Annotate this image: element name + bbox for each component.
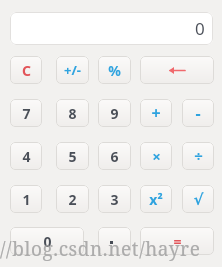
- staticText: ×: [152, 146, 161, 166]
- button[interactable]: 4: [10, 142, 42, 170]
- staticText: 9: [110, 104, 119, 123]
- staticText: 0: [195, 17, 205, 40]
- staticText: -: [195, 102, 201, 124]
- staticText: 2: [68, 190, 77, 209]
- staticText: 3: [110, 190, 119, 209]
- staticText: 4: [22, 147, 31, 166]
- button[interactable]: √: [182, 185, 214, 213]
- staticText: //blog.csdn.net/hayre: [0, 236, 201, 262]
- button[interactable]: ×: [140, 142, 172, 170]
- button[interactable]: ÷: [182, 142, 214, 170]
- button[interactable]: =: [140, 227, 214, 255]
- button[interactable]: 1: [10, 185, 42, 213]
- button[interactable]: 8: [56, 99, 89, 127]
- button[interactable]: 5: [56, 142, 89, 170]
- button[interactable]: [140, 56, 214, 84]
- staticText: +/-: [64, 61, 81, 79]
- button[interactable]: +: [140, 99, 172, 127]
- staticText: 7: [22, 104, 31, 123]
- button[interactable]: %: [98, 56, 131, 84]
- button[interactable]: 7: [10, 99, 42, 127]
- staticText: 8: [68, 104, 77, 123]
- button[interactable]: 3: [98, 185, 131, 213]
- button[interactable]: [98, 227, 131, 255]
- button[interactable]: 0: [10, 227, 84, 255]
- staticText: 0: [43, 232, 52, 251]
- staticText: =: [173, 232, 182, 251]
- staticText: %: [108, 61, 121, 80]
- staticText: x²: [149, 190, 163, 209]
- staticText: √: [193, 191, 204, 208]
- button[interactable]: C: [10, 56, 42, 84]
- staticText: C: [22, 61, 31, 80]
- staticText: 1: [22, 190, 31, 209]
- button[interactable]: -: [182, 99, 214, 127]
- button[interactable]: 6: [98, 142, 131, 170]
- button[interactable]: 0: [10, 12, 213, 45]
- staticText: 5: [68, 147, 77, 166]
- staticText: ÷: [194, 146, 203, 166]
- button[interactable]: x²: [140, 185, 172, 213]
- button[interactable]: 9: [98, 99, 131, 127]
- button[interactable]: +/-: [56, 56, 89, 84]
- staticText: 6: [110, 147, 119, 166]
- staticText: +: [151, 102, 161, 124]
- button[interactable]: 2: [56, 185, 89, 213]
